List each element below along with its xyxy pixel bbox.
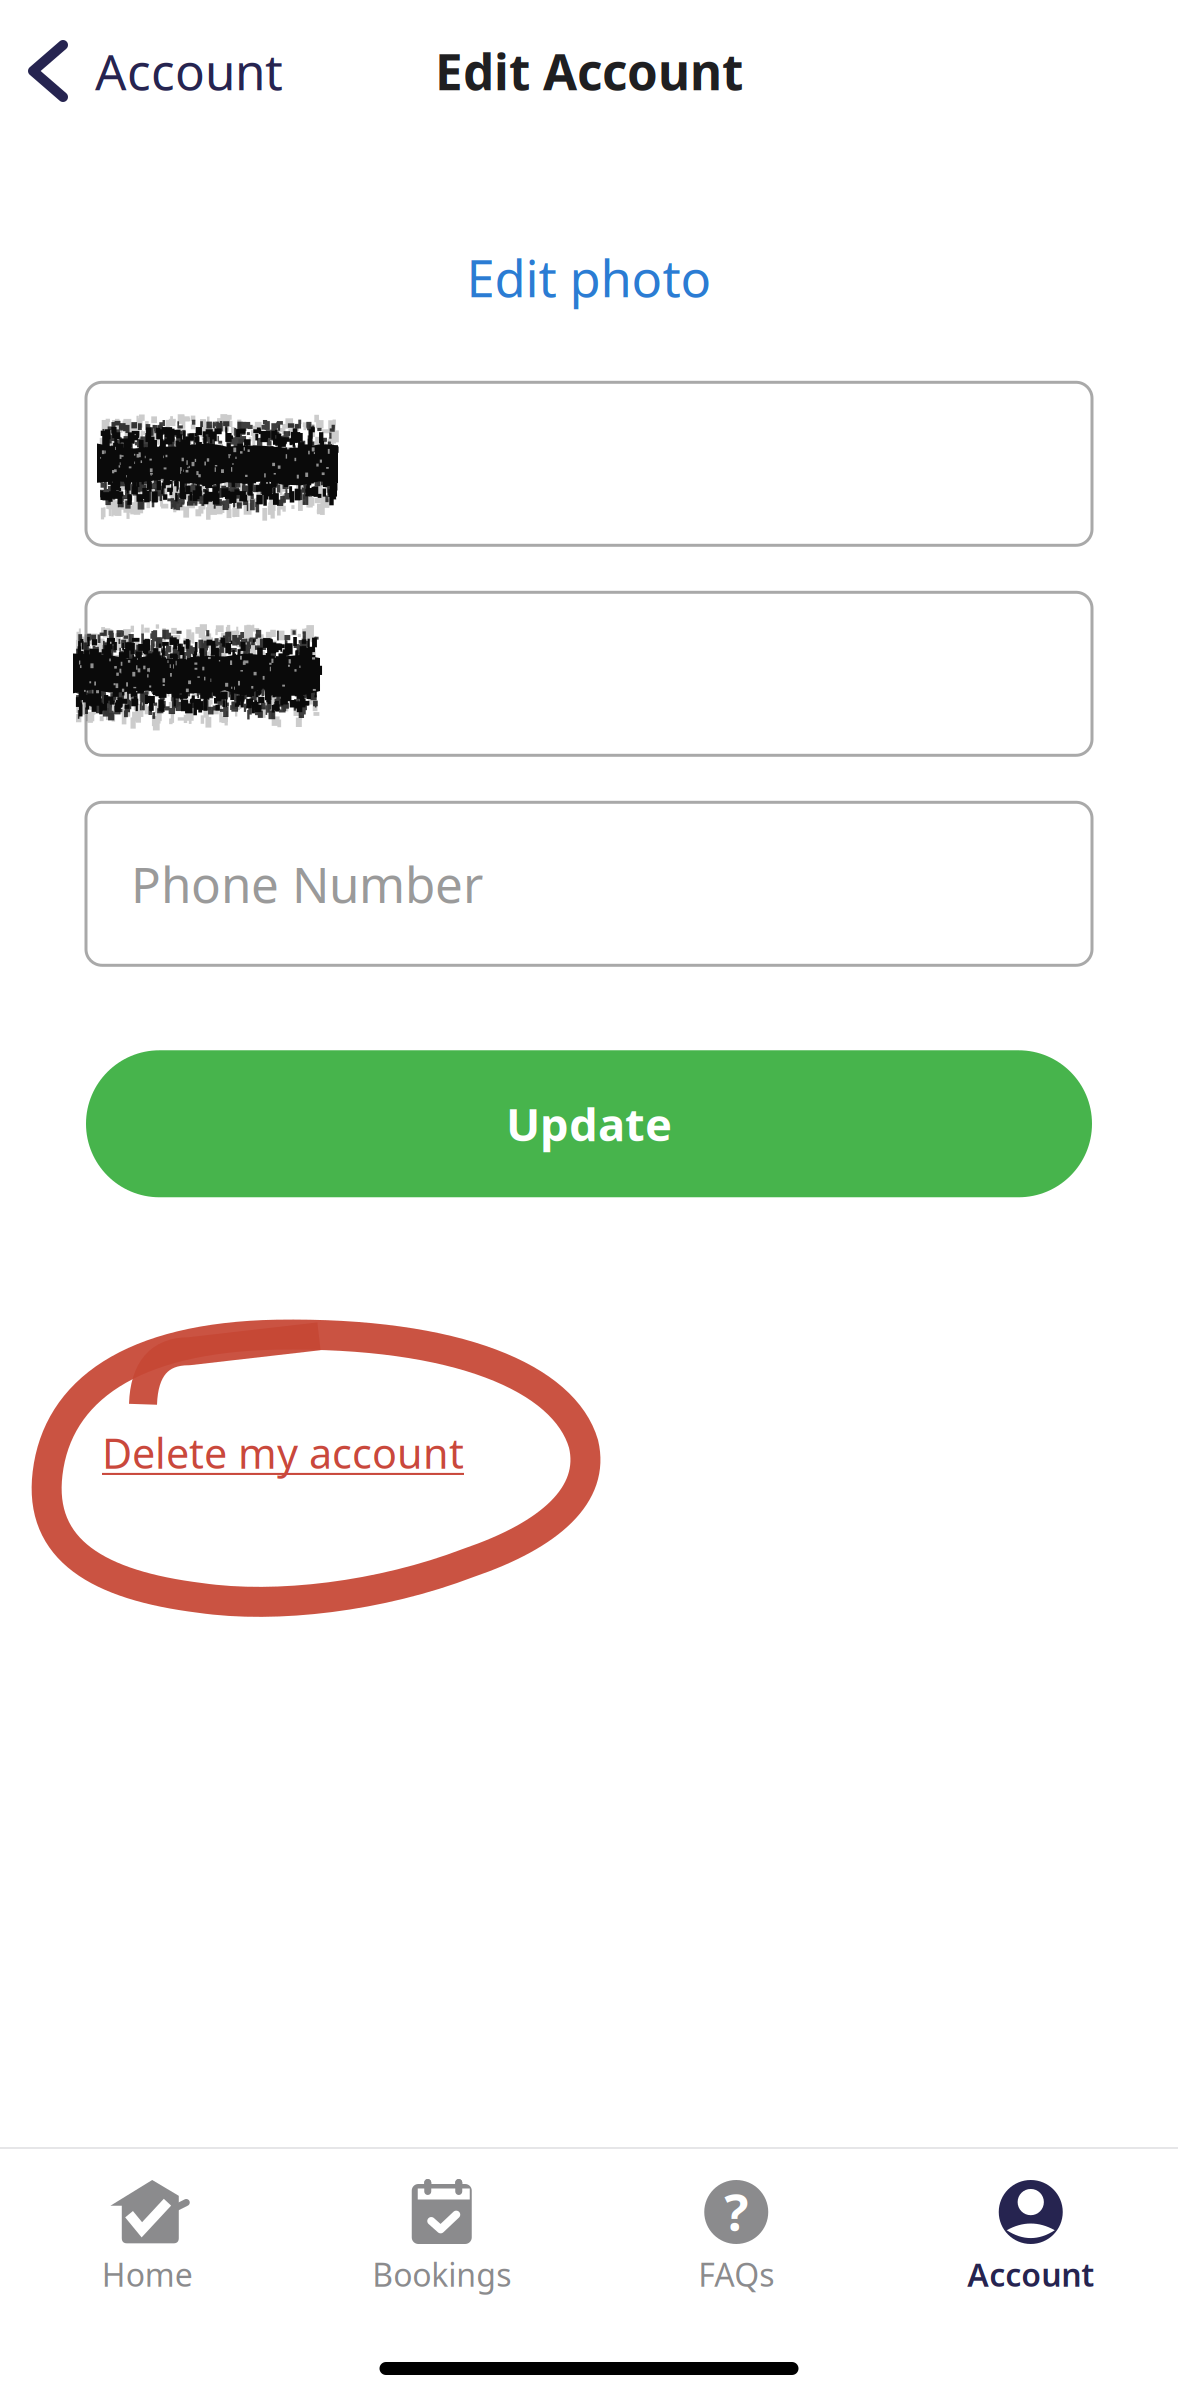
staticText: FAQs (698, 2253, 774, 2295)
staticText: Delete my account (102, 1425, 464, 1480)
staticText: Bookings (372, 2253, 511, 2295)
button[interactable]: Delete my account (102, 1417, 464, 1488)
button[interactable]: Email (86, 592, 1092, 755)
staticText: Update (506, 1094, 672, 1154)
button[interactable]: Home (0, 2169, 294, 2303)
staticText: Account (967, 2253, 1094, 2295)
staticText: ? (724, 2177, 748, 2245)
button[interactable]: Edit photo (436, 238, 741, 317)
button[interactable]: Name (86, 382, 1092, 545)
button[interactable]: Bookings (294, 2169, 589, 2303)
button[interactable]: Update (86, 1050, 1092, 1197)
button[interactable]: Account (883, 2169, 1178, 2303)
staticText: Phone Number (131, 851, 483, 916)
button[interactable]: Account (0, 18, 283, 124)
staticText: Edit Account (435, 38, 743, 104)
button[interactable]: Phone Number (86, 802, 1092, 965)
staticText: Home (102, 2253, 193, 2295)
button[interactable]: ? (589, 2169, 883, 2303)
staticText: Edit photo (466, 244, 711, 311)
staticText: Account (95, 38, 283, 104)
